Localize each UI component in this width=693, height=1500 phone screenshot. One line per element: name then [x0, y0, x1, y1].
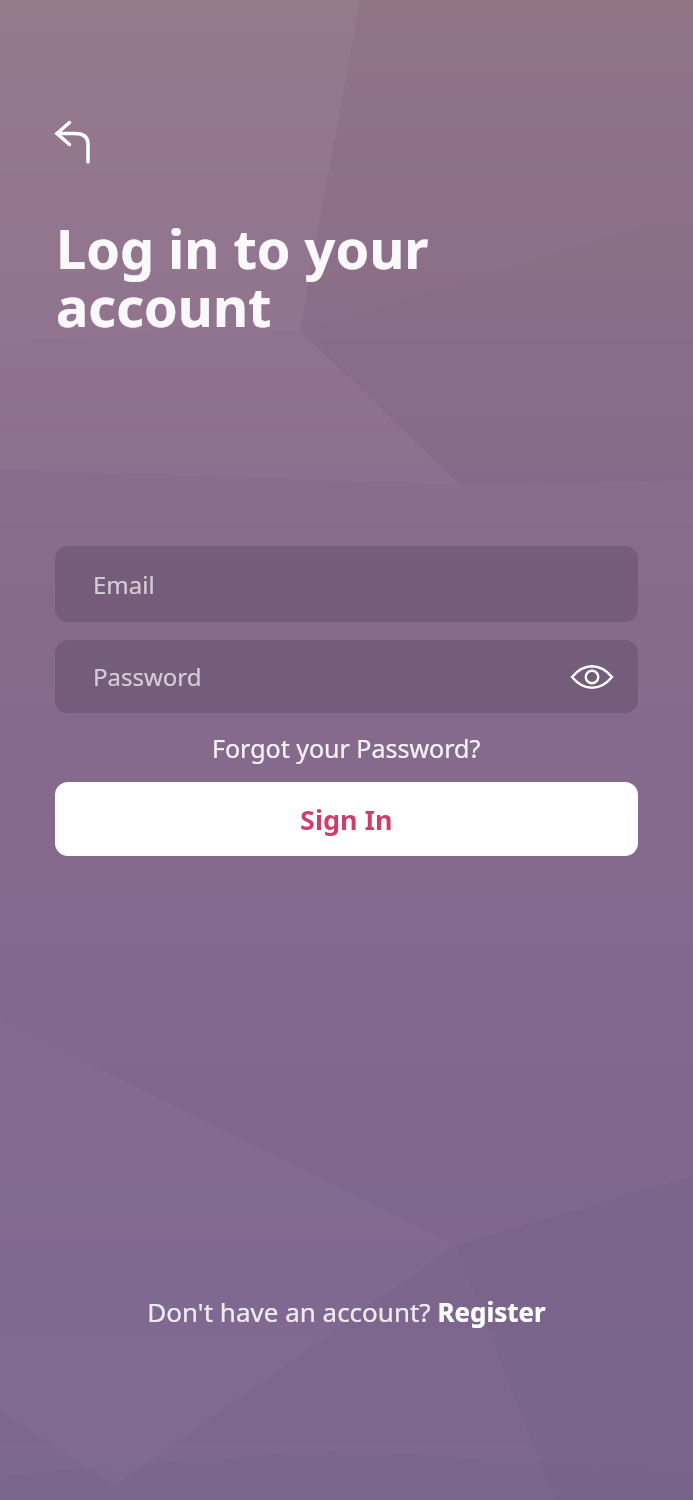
button[interactable]: Don't have an account? Register: [0, 1294, 693, 1329]
button[interactable]: Forgot your Password?: [0, 731, 693, 765]
staticText: Log in to your account: [56, 211, 429, 343]
button[interactable]: Sign In: [55, 782, 638, 856]
staticText: Forgot your Password?: [212, 731, 481, 765]
button[interactable]: Email: [55, 546, 638, 622]
staticText: Don't have an account? Register: [147, 1294, 546, 1329]
staticText: Email: [93, 568, 155, 601]
button[interactable]: Password: [55, 640, 638, 713]
staticText: Password: [93, 660, 202, 693]
button[interactable]: [50, 114, 98, 162]
staticText: Sign In: [300, 801, 393, 838]
